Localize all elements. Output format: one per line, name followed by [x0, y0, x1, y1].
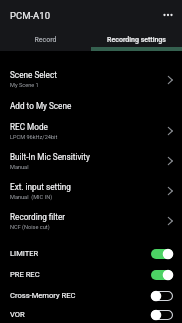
button[interactable]: VOR [0, 306, 182, 323]
button[interactable]: Built-In Mic Sensitivity [0, 146, 182, 176]
staticText: Record [34, 36, 57, 44]
staticText: Scene Select [10, 70, 57, 80]
button[interactable]: REC Mode [0, 116, 182, 146]
staticText: Manual [10, 164, 29, 171]
staticText: Recording filter [10, 212, 66, 222]
staticText: Add to My Scene [10, 101, 72, 111]
staticText: PCM-A10 [10, 10, 50, 21]
staticText: Recording settings [107, 36, 166, 44]
button[interactable]: Scene Select [0, 64, 182, 95]
button[interactable]: Record [0, 30, 91, 51]
staticText: VOR [10, 310, 25, 319]
staticText: LPCM 96kHz/24bit [10, 134, 58, 141]
staticText: LIMITER [10, 249, 39, 258]
staticText: My Scene 1 [10, 82, 39, 89]
button[interactable]: Add to My Scene [0, 95, 182, 116]
button[interactable]: Ext. input setting [0, 176, 182, 206]
staticText: REC Mode [10, 122, 48, 132]
button[interactable]: PRE REC [0, 264, 182, 285]
staticText: NCF (Noise cut) [10, 224, 50, 231]
button[interactable]: Recording settings [91, 30, 182, 51]
button[interactable]: Cross-Memory REC [0, 285, 182, 306]
staticText: Cross-Memory REC [10, 291, 76, 300]
staticText: Built-In Mic Sensitivity [10, 152, 90, 162]
staticText: Ext. input setting [10, 182, 71, 192]
button[interactable]: More options [159, 6, 177, 24]
staticText: Manual (MIC IN) [10, 194, 53, 201]
staticText: PRE REC [10, 270, 40, 279]
button[interactable]: LIMITER [0, 243, 182, 264]
button[interactable]: Recording filter [0, 206, 182, 236]
